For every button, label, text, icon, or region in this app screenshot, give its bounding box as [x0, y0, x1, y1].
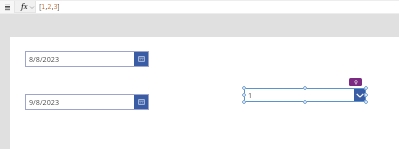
button[interactable]: Resize handle	[303, 100, 307, 104]
button[interactable]: Resize handle	[242, 100, 246, 104]
button[interactable]: Resize handle	[303, 86, 307, 90]
button[interactable]: Choose date	[134, 94, 149, 110]
button[interactable]: Resize handle	[364, 100, 368, 104]
button[interactable]: Resize handle	[242, 86, 246, 90]
staticText: 9/8/2023	[29, 97, 60, 107]
staticText: 8/8/2023	[29, 54, 60, 64]
button[interactable]: Resize handle	[364, 86, 368, 90]
button[interactable]: [1,2,3]	[36, 0, 399, 13]
staticText: 1	[248, 90, 253, 100]
button[interactable]: Resize handle	[242, 93, 246, 97]
button[interactable]: 8/8/2023	[25, 51, 149, 67]
button[interactable]: Insert function	[14, 0, 36, 13]
button[interactable]: Resize handle	[364, 93, 368, 97]
staticText: [1,2,3]	[38, 2, 60, 12]
button[interactable]: Choose date	[134, 51, 149, 67]
button[interactable]: 1	[244, 88, 366, 102]
button[interactable]: Menu	[0, 0, 14, 13]
button[interactable]: 9/8/2023	[25, 94, 149, 110]
staticText: fx	[21, 2, 28, 12]
button[interactable]: Expand dropdown	[354, 88, 366, 102]
button[interactable]: Suggested actions	[349, 78, 362, 86]
